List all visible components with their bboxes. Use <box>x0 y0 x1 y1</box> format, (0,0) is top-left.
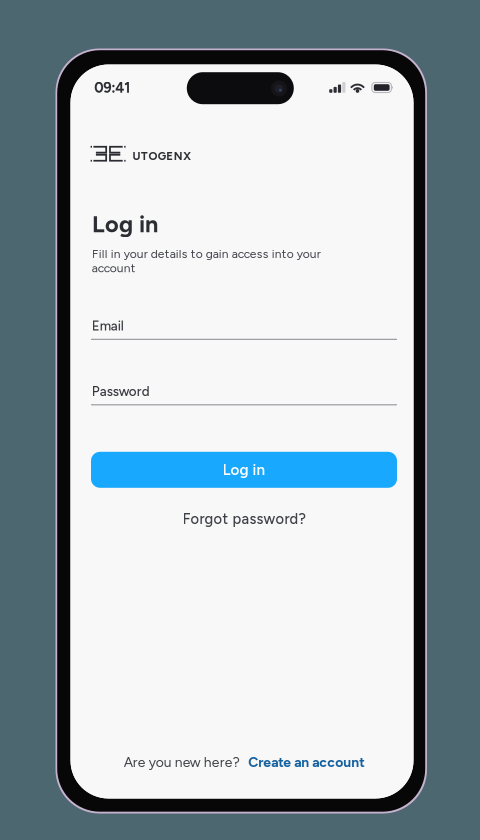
button[interactable]: Log in <box>91 452 397 488</box>
staticText: Forgot password? <box>182 510 305 528</box>
staticText: Are you new here? <box>124 754 240 770</box>
staticText: Password <box>92 383 150 399</box>
staticText: UTOGENX <box>132 149 191 163</box>
staticText: Log in <box>92 210 158 238</box>
staticText: Create an account <box>248 754 365 770</box>
staticText: Log in <box>222 461 265 479</box>
staticText: 09:41 <box>94 79 130 96</box>
staticText: Email <box>92 318 124 334</box>
button[interactable]: Create an account <box>248 754 365 770</box>
staticText: Fill in your details to gain access into… <box>92 246 321 275</box>
button[interactable]: Forgot password? <box>174 508 314 530</box>
